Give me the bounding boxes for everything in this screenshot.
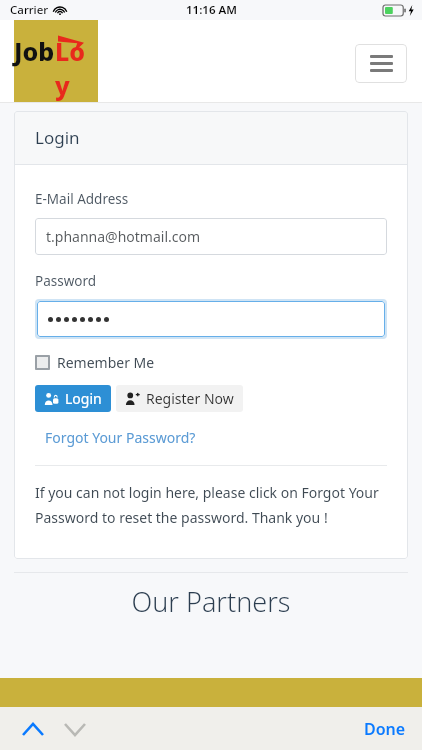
staticText: Password — [35, 272, 97, 290]
button[interactable]: Done — [348, 710, 422, 748]
button[interactable]: t.phanna@hotmail.com — [35, 218, 387, 255]
staticText: Register Now — [146, 389, 234, 408]
button[interactable]: Menu — [355, 44, 407, 83]
staticText: Login — [35, 126, 80, 149]
button[interactable]: Register Now — [116, 385, 243, 412]
staticText: Done — [364, 718, 406, 740]
staticText: 11:16 AM — [186, 2, 237, 18]
button[interactable] — [37, 301, 385, 337]
staticText: Loy — [55, 34, 98, 102]
staticText: Login — [65, 389, 102, 408]
button[interactable]: Forgot Your Password? — [45, 428, 196, 447]
staticText: E-Mail Address — [35, 190, 129, 208]
button[interactable]: Login — [35, 385, 111, 412]
button[interactable]: Previous field — [16, 712, 50, 746]
button[interactable]: JobLoy home — [14, 20, 98, 102]
staticText: Remember Me — [57, 353, 155, 372]
staticText: t.phanna@hotmail.com — [46, 227, 201, 246]
staticText: Our Partners — [0, 583, 422, 620]
button[interactable]: Next field — [58, 712, 92, 746]
staticText: Job — [14, 34, 55, 68]
button[interactable]: Remember Me — [35, 353, 155, 372]
staticText: Carrier — [10, 2, 49, 18]
staticText: If you can not login here, please click … — [35, 483, 387, 527]
